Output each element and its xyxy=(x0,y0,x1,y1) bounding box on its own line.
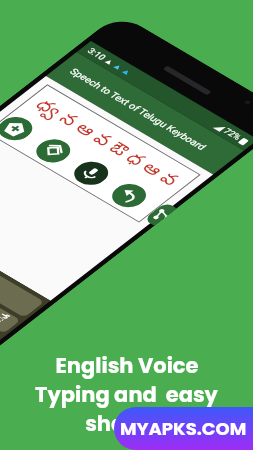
button[interactable]: Speech to Text of Telugu Keyboard xyxy=(45,42,245,185)
button[interactable]: Copy xyxy=(28,133,78,169)
staticText: 3:10 xyxy=(84,45,109,63)
staticText: Typing and easy xyxy=(35,380,218,409)
staticText: sharing xyxy=(85,409,169,438)
staticText: English Voice xyxy=(55,351,199,380)
button[interactable]: Share xyxy=(142,201,178,227)
staticText: ధ్వ న ఆ వ ఔ ధ ఆ వ xyxy=(27,87,185,200)
button[interactable]: Add xyxy=(0,111,40,146)
button[interactable]: ధ్వ న ఆ వ ఔ ధ ఆ వ xyxy=(0,75,203,232)
button[interactable]: ే xyxy=(0,304,22,335)
staticText: MYAPKS.COM xyxy=(120,416,247,441)
staticText: Speech to Text of Telugu Keyboard xyxy=(66,59,209,160)
button[interactable]: MYAPKS.COM xyxy=(114,407,253,450)
button[interactable]: Microphone xyxy=(66,155,116,191)
staticText: 72% xyxy=(220,126,244,143)
button[interactable]: Undo xyxy=(104,178,154,213)
button[interactable]: ం xyxy=(0,320,1,351)
staticText: ే xyxy=(0,312,11,328)
button[interactable] xyxy=(0,251,46,322)
